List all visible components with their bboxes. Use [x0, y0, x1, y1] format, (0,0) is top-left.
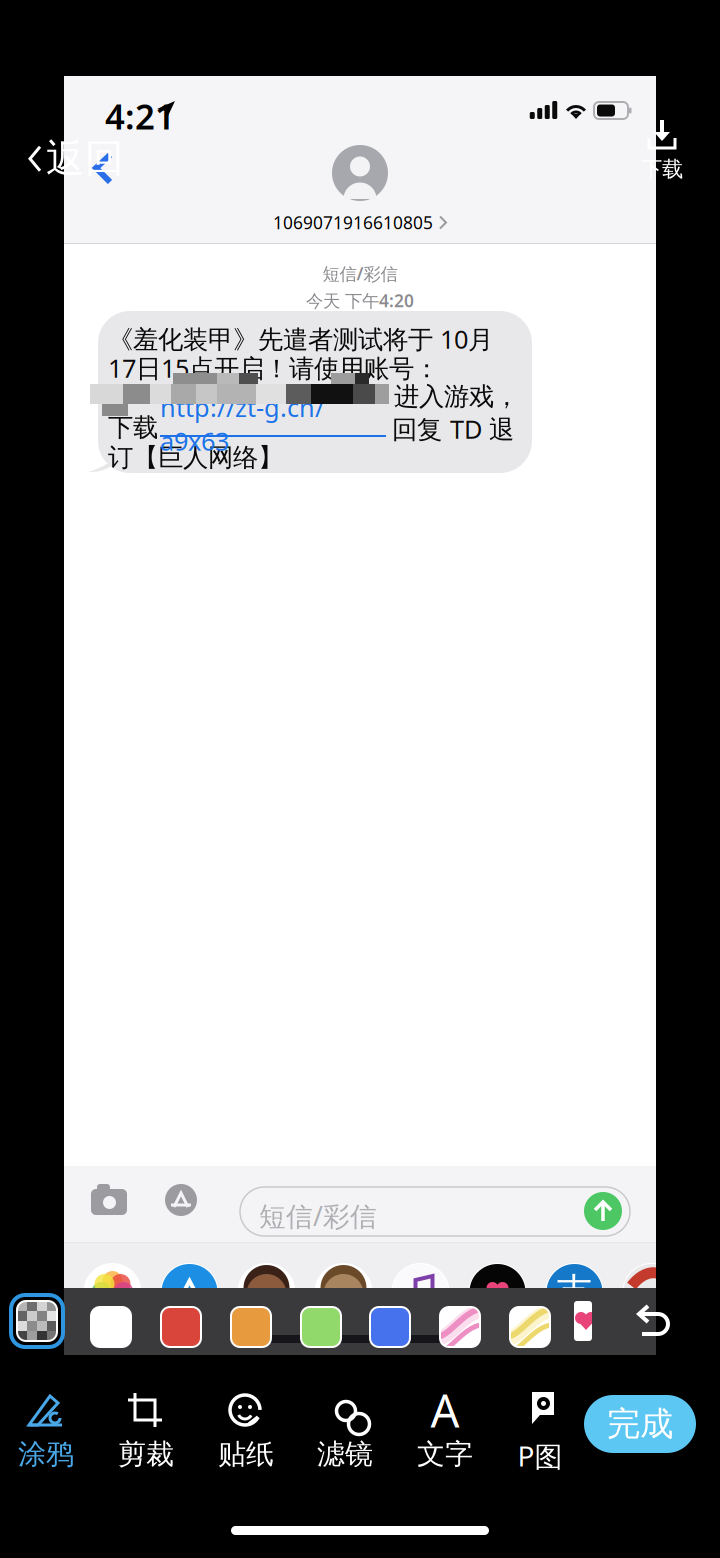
button[interactable]: 剪裁 — [96, 1368, 196, 1468]
staticText: 1069071916610805 — [273, 211, 433, 234]
button[interactable]: 颜色 — [364, 1301, 416, 1353]
staticText: A — [430, 1380, 459, 1440]
button[interactable]: 涂鸦 — [0, 1368, 96, 1468]
button[interactable]: App Store — [165, 1184, 197, 1216]
button[interactable]: 滤镜 — [295, 1368, 395, 1468]
button[interactable]: App — [151, 1253, 228, 1330]
staticText: http://zt-g.cn/a9x63 — [160, 390, 324, 458]
staticText: 今天 下午4:20 — [306, 289, 414, 312]
button[interactable]: App — [382, 1253, 459, 1330]
staticText: 剪裁 — [118, 1437, 174, 1471]
staticText: 滤镜 — [317, 1437, 373, 1471]
staticText: 进入游戏， — [394, 381, 519, 412]
button[interactable]: 颜色 — [155, 1301, 207, 1353]
staticText: 订【巨人网络】 — [108, 442, 283, 473]
button[interactable]: App — [536, 1253, 613, 1330]
button[interactable]: App — [228, 1253, 305, 1330]
button[interactable]: 撤销 — [634, 1304, 674, 1344]
staticText: P图 — [517, 1437, 562, 1474]
staticText: 短信/彩信 — [322, 262, 397, 285]
button[interactable]: 贴纸 — [196, 1368, 296, 1468]
button[interactable]: 发送 — [584, 1192, 622, 1230]
button[interactable]: 马赛克 — [7, 1291, 67, 1351]
staticText: 完成 — [607, 1403, 673, 1444]
button[interactable]: App — [305, 1253, 382, 1330]
button[interactable]: App — [459, 1253, 536, 1330]
button[interactable]: 下载 — [640, 120, 684, 182]
button[interactable]: A — [395, 1368, 495, 1468]
staticText: 《羞化装甲》先遣者测试将于 10月 — [108, 322, 493, 356]
staticText: 下载 — [108, 412, 158, 443]
staticText: 支 — [556, 1269, 593, 1315]
button[interactable]: 图案 — [504, 1301, 556, 1353]
staticText: 回复 TD 退 — [392, 412, 514, 446]
staticText: 短信/彩信 — [259, 1198, 377, 1233]
button[interactable]: 完成 — [584, 1395, 696, 1453]
staticText: 返回 — [46, 135, 124, 182]
button[interactable]: http://zt-g.cn/a9x63 — [160, 412, 386, 438]
button[interactable]: 相机 — [91, 1182, 127, 1220]
button[interactable]: 颜色 — [225, 1301, 277, 1353]
button[interactable]: P图 — [490, 1368, 590, 1468]
button[interactable]: App — [613, 1253, 690, 1330]
staticText: 4:21 — [105, 93, 175, 139]
staticText: 贴纸 — [218, 1437, 274, 1471]
staticText: 下载 — [641, 156, 683, 182]
button[interactable]: App — [74, 1253, 151, 1330]
button[interactable]: 贴图 — [574, 1301, 626, 1353]
button[interactable]: 返回 — [26, 133, 126, 184]
button[interactable]: 1069071916610805 — [64, 145, 656, 234]
staticText: 文字 — [417, 1437, 473, 1471]
button[interactable]: 颜色 — [295, 1301, 347, 1353]
staticText: 涂鸦 — [18, 1437, 74, 1471]
staticText: 17日15点开启！请使用账号： — [108, 351, 439, 385]
button[interactable]: 颜色 — [85, 1301, 137, 1353]
button[interactable]: 图案 — [434, 1301, 486, 1353]
